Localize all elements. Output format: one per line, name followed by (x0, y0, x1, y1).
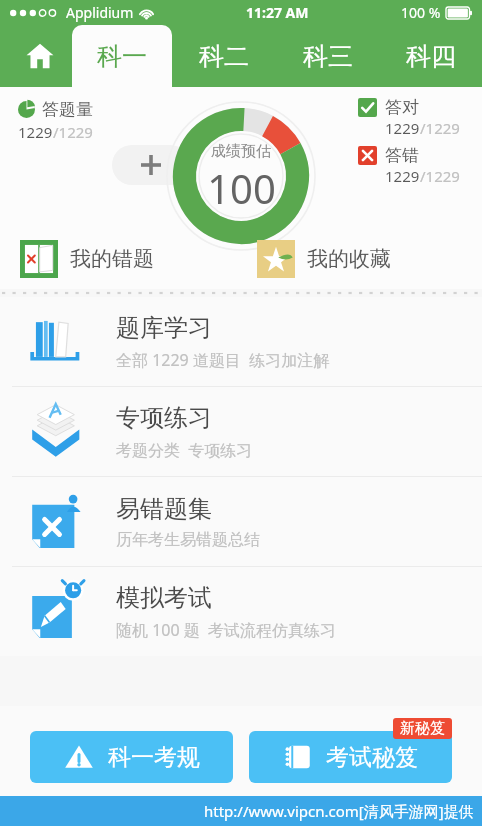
button[interactable]: Add (112, 145, 190, 185)
staticText: 答对 (385, 97, 419, 118)
staticText: 全部 1229 道题目 练习加注解 (116, 349, 330, 371)
staticText: 模拟考试 (116, 583, 212, 613)
staticText: /1229 (420, 118, 460, 138)
staticText: 考题分类 专项练习 (116, 439, 253, 461)
staticText: 科四 (406, 41, 456, 72)
staticText: 1229 (385, 166, 420, 186)
staticText: 题库学习 (116, 313, 212, 343)
staticText: 成绩预估 (211, 142, 271, 161)
staticText: 科一 (97, 41, 147, 72)
staticText: Applidium (66, 3, 134, 22)
staticText: /1229 (53, 122, 93, 142)
button[interactable]: 易错题集 (0, 477, 482, 566)
staticText: 答错 (385, 145, 419, 166)
button[interactable]: 科二 (172, 25, 276, 87)
staticText: 1229 (18, 122, 53, 142)
staticText: 100 (207, 161, 276, 215)
staticText: 1229 (385, 118, 420, 138)
button[interactable]: 科三 (276, 25, 379, 87)
button[interactable]: 我的错题 (0, 229, 241, 289)
staticText: 专项练习 (116, 403, 212, 433)
staticText: 历年考生易错题总结 (116, 530, 260, 550)
staticText: 科一考规 (108, 743, 200, 772)
button[interactable]: 科一 (72, 25, 172, 87)
button[interactable]: 我的收藏 (241, 229, 482, 289)
button[interactable]: 科四 (379, 25, 482, 87)
staticText: 11:27 AM (246, 3, 309, 22)
staticText: 答题量 (42, 99, 93, 120)
staticText: 新秘笈 (400, 719, 445, 738)
staticText: 我的收藏 (307, 246, 391, 272)
staticText: 100 % (401, 3, 441, 22)
staticText: 考试秘笈 (326, 743, 418, 772)
staticText: 科三 (303, 41, 353, 72)
button[interactable]: 考试秘笈 (249, 731, 452, 783)
staticText: 随机 100 题 考试流程仿真练习 (116, 619, 337, 641)
staticText: 我的错题 (70, 246, 154, 272)
staticText: 科二 (199, 41, 249, 72)
staticText: /1229 (420, 166, 460, 186)
button[interactable]: 专项练习 (0, 387, 482, 476)
staticText: 易错题集 (116, 494, 212, 524)
button[interactable]: 科一考规 (30, 731, 233, 783)
button[interactable]: 模拟考试 (0, 567, 482, 656)
button[interactable]: 题库学习 (0, 297, 482, 386)
staticText: http://www.vipcn.com[清风手游网]提供 (204, 801, 474, 821)
button[interactable]: Home (12, 25, 68, 87)
